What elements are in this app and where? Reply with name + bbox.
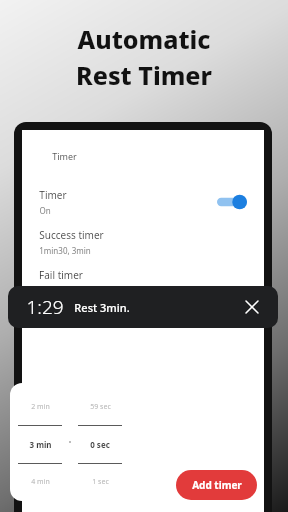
staticText: 5min	[39, 285, 59, 296]
button[interactable]: 2 min	[10, 383, 70, 501]
staticText: 3 min	[29, 439, 52, 450]
staticText: 1min30, 3min	[39, 245, 91, 256]
button[interactable]: 59 sec	[70, 383, 130, 501]
staticText: Add timer	[192, 478, 242, 492]
staticText: On	[39, 205, 51, 216]
staticText: 2 min	[31, 402, 50, 412]
staticText: 1:29	[26, 294, 64, 320]
button[interactable]: 1:29	[8, 286, 278, 328]
button[interactable]: Close	[240, 295, 264, 319]
button[interactable]: Timer	[22, 188, 264, 216]
staticText: 1 sec	[92, 477, 109, 487]
button[interactable]: Success timer	[22, 228, 264, 256]
staticText: Timer	[39, 188, 67, 202]
staticText: 4 min	[31, 477, 50, 487]
staticText: 59 sec	[90, 402, 111, 412]
button[interactable]: Add timer	[176, 470, 257, 500]
staticText: Automatic	[77, 22, 211, 56]
staticText: 0 sec	[90, 439, 110, 450]
button[interactable]: Fail timer	[22, 268, 264, 296]
staticText: Rest Timer	[76, 58, 212, 92]
button[interactable]: Toggle timer	[217, 194, 247, 210]
staticText: Success timer	[39, 228, 104, 242]
staticText: Fail timer	[39, 268, 83, 282]
staticText: Timer	[52, 150, 77, 162]
staticText: Rest 3min.	[74, 300, 130, 315]
